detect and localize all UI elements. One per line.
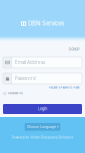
staticText: Password bbox=[15, 76, 36, 81]
staticText: Powered by Verbit Computing Solutions bbox=[11, 136, 73, 139]
staticText: DBN Services bbox=[28, 20, 64, 27]
button[interactable]: Remember me bbox=[3, 92, 23, 95]
staticText: Request a Password Reset bbox=[48, 86, 79, 89]
staticText: Login bbox=[38, 107, 47, 111]
staticText: Remember me bbox=[8, 92, 23, 95]
staticText: SIGNUP bbox=[68, 48, 79, 51]
button[interactable]: Password bbox=[3, 73, 82, 84]
button[interactable]: SIGNUP bbox=[67, 46, 81, 53]
button[interactable]: Login bbox=[3, 104, 82, 114]
button[interactable]: Email Address bbox=[3, 57, 82, 68]
button[interactable]: Request a Password Reset bbox=[47, 86, 80, 89]
staticText: Choose Language bbox=[27, 125, 56, 129]
staticText: ▾ bbox=[57, 125, 58, 128]
staticText: Email Address bbox=[15, 60, 45, 65]
button[interactable]: Choose Language bbox=[25, 123, 60, 131]
